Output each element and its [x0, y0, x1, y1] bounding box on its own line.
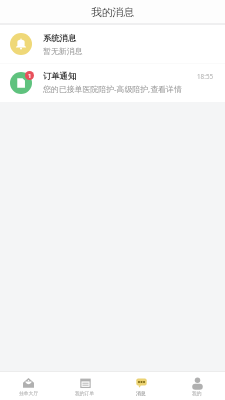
staticText: 系统消息: [43, 33, 77, 43]
staticText: 您的已接单医院陪护-高级陪护,查看详情: [43, 84, 182, 95]
staticText: 我的消息: [91, 6, 135, 20]
staticText: 我的: [192, 390, 202, 396]
staticText: 我的订单: [75, 390, 95, 396]
button[interactable]: 系统消息: [0, 25, 225, 63]
button[interactable]: 我的: [169, 372, 225, 400]
staticText: 消息: [136, 390, 146, 396]
button[interactable]: 1: [0, 64, 225, 102]
staticText: 挂单大厅: [19, 390, 39, 396]
button[interactable]: 我的订单: [57, 372, 113, 400]
button[interactable]: 消息: [113, 372, 169, 400]
staticText: 18:55: [197, 72, 214, 81]
staticText: 暂无新消息: [43, 46, 83, 56]
staticText: 1: [28, 72, 32, 80]
staticText: 订单通知: [43, 71, 77, 81]
button[interactable]: 挂单大厅: [0, 372, 57, 400]
